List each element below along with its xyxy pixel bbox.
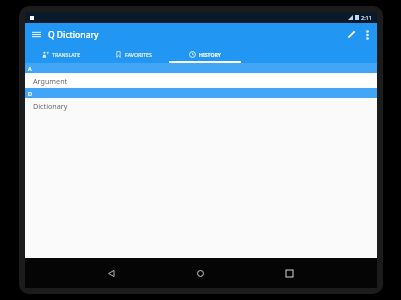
button[interactable]: FAVORITES: [97, 46, 169, 63]
staticText: Q Dictionary: [48, 29, 99, 41]
staticText: FAVORITES: [125, 51, 152, 58]
button[interactable]: Edit: [341, 25, 362, 44]
button[interactable]: Back: [100, 262, 123, 285]
staticText: TRANSLATE: [52, 51, 81, 58]
button[interactable]: Home: [189, 262, 212, 285]
staticText: A: [28, 65, 32, 72]
button[interactable]: Open navigation drawer: [25, 25, 48, 44]
button[interactable]: D: [25, 88, 377, 98]
staticText: Dictionary: [33, 101, 68, 111]
button[interactable]: Argument: [25, 73, 377, 88]
button[interactable]: Dictionary: [25, 98, 377, 113]
button[interactable]: More options: [362, 25, 377, 45]
staticText: D: [28, 90, 33, 97]
staticText: 2:11: [361, 14, 372, 21]
button[interactable]: Recent apps: [278, 262, 301, 285]
button[interactable]: TRANSLATE: [25, 46, 97, 63]
staticText: Argument: [33, 76, 68, 86]
button[interactable]: HISTORY: [169, 46, 241, 63]
staticText: HISTORY: [199, 51, 221, 58]
button[interactable]: A: [25, 63, 377, 73]
